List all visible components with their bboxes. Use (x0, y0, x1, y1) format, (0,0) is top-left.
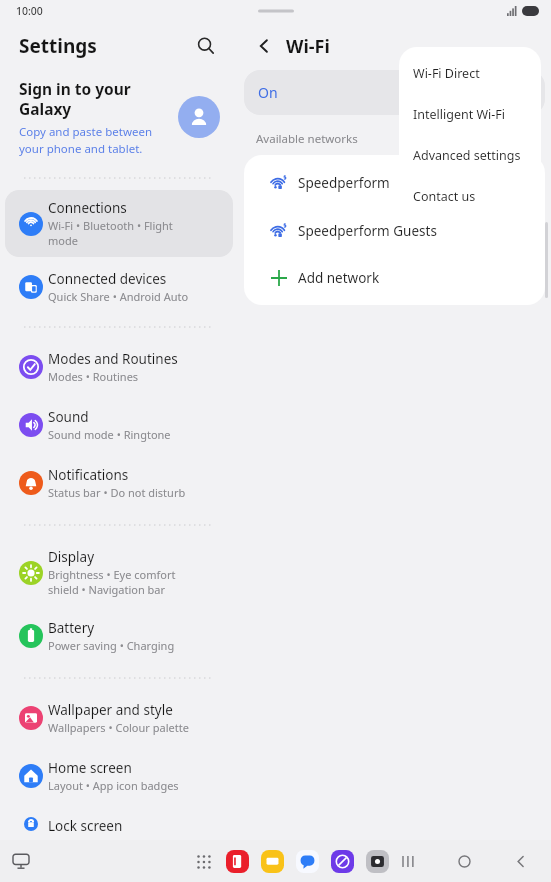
staticText: Wallpapers • Colour palette (48, 720, 189, 735)
staticText: Connected devices (48, 270, 167, 288)
staticText: Sound (48, 408, 89, 426)
button[interactable]: Back (507, 848, 533, 874)
button[interactable]: Battery (5, 610, 233, 662)
button[interactable]: Sound (5, 399, 233, 451)
button[interactable]: Recent apps panel (8, 848, 34, 874)
button[interactable]: On (244, 70, 545, 115)
staticText: Settings (19, 33, 97, 59)
staticText: Layout • App icon badges (48, 778, 179, 793)
button[interactable]: Speedperform Guests (244, 207, 545, 255)
staticText: Contact us (413, 188, 476, 205)
button[interactable]: Modes and Routines (5, 341, 233, 393)
staticText: Connections (48, 199, 127, 217)
staticText: Speedperform (298, 174, 390, 192)
staticText: Advanced settings (413, 147, 521, 164)
button[interactable]: Wi-Fi Direct (399, 53, 541, 94)
button[interactable]: Apps (191, 849, 215, 873)
staticText: Notifications (48, 466, 129, 484)
staticText: Modes and Routines (48, 350, 178, 368)
staticText: Wi-Fi Direct (413, 65, 480, 82)
staticText: Modes • Routines (48, 369, 139, 384)
staticText: Speedperform Guests (298, 222, 437, 240)
button[interactable]: Recents (395, 848, 421, 874)
button[interactable]: Home (451, 848, 477, 874)
staticText: Wi-Fi (286, 34, 330, 59)
staticText: On (258, 83, 278, 102)
staticText: Status bar • Do not disturb (48, 485, 186, 500)
staticText: Wallpaper and style (48, 701, 173, 719)
button[interactable]: Display (5, 539, 233, 606)
button[interactable]: Wallpaper and style (5, 692, 233, 744)
staticText: Copy and paste between your phone and ta… (19, 124, 153, 156)
button[interactable]: Speedperform (244, 159, 545, 207)
staticText: Battery (48, 619, 95, 637)
button[interactable]: Connections (5, 190, 233, 257)
button[interactable]: Home screen (5, 750, 233, 802)
staticText: Add network (298, 269, 380, 287)
staticText: Sound mode • Ringtone (48, 427, 171, 442)
button[interactable]: Add network (244, 255, 545, 301)
staticText: Home screen (48, 759, 132, 777)
staticText: Brightness • Eye comfort shield • Naviga… (48, 567, 176, 597)
staticText: 10:00 (16, 4, 43, 18)
staticText: Quick Share • Android Auto (48, 289, 189, 304)
button[interactable]: App (259, 848, 285, 874)
button[interactable]: Intelligent Wi-Fi (399, 94, 541, 135)
button[interactable]: Sign in to your Galaxy (0, 70, 238, 162)
button[interactable]: Back (248, 30, 280, 62)
button[interactable]: Advanced settings (399, 135, 541, 176)
staticText: Lock screen (48, 817, 123, 831)
staticText: Intelligent Wi-Fi (413, 106, 506, 123)
button[interactable]: App (329, 848, 355, 874)
staticText: Wi-Fi • Bluetooth • Flight mode (48, 218, 173, 248)
button[interactable]: Connected devices (5, 261, 233, 313)
staticText: Power saving • Charging (48, 638, 175, 653)
button[interactable]: Notifications (5, 457, 233, 509)
staticText: Sign in to your Galaxy (19, 78, 131, 120)
staticText: Display (48, 548, 95, 566)
button[interactable]: App (364, 848, 390, 874)
button[interactable]: App (224, 848, 250, 874)
button[interactable]: Lock screen (5, 808, 233, 840)
button[interactable]: Search (190, 30, 222, 62)
button[interactable]: App (294, 848, 320, 874)
staticText: Available networks (256, 131, 358, 147)
button[interactable]: Contact us (399, 176, 541, 217)
